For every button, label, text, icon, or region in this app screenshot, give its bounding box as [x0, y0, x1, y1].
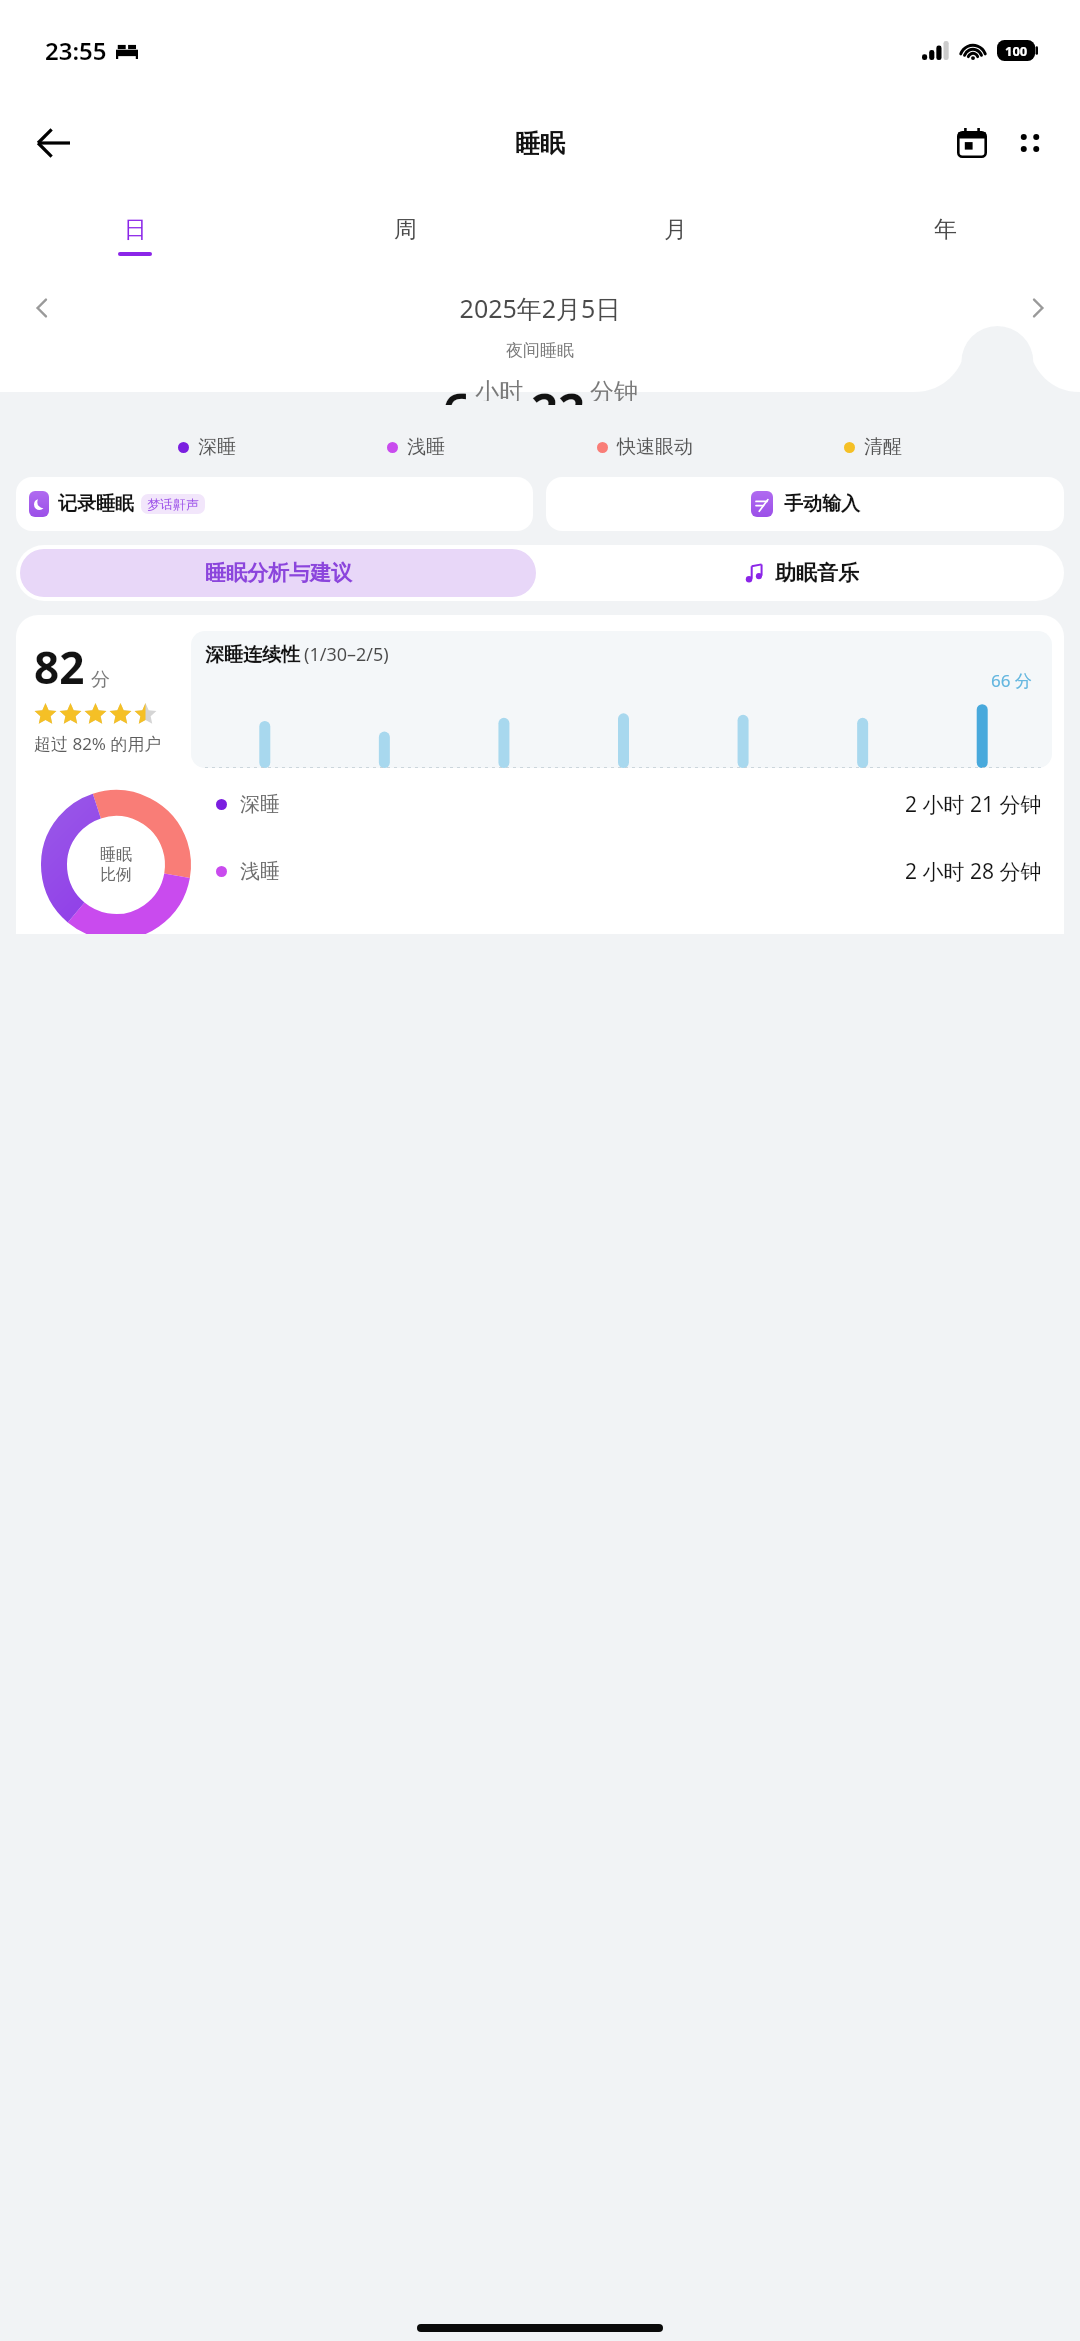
staticText: 清醒 [864, 435, 902, 459]
staticText: 月 [664, 215, 687, 244]
button[interactable]: More options [1002, 115, 1058, 171]
staticText: 周 [394, 215, 417, 244]
staticText: 睡眠 [515, 128, 565, 159]
staticText: 手动输入 [784, 492, 860, 516]
staticText: 2025年2月5日 [66, 291, 1014, 325]
staticText: 年 [934, 215, 957, 244]
staticText: 22 [531, 377, 585, 405]
staticText: 2 小时 21 分钟 [905, 790, 1042, 819]
button[interactable]: 月 [540, 198, 810, 272]
staticText: 深睡连续性 [205, 643, 300, 667]
staticText: 66 分 [991, 669, 1032, 692]
button[interactable]: Back [22, 112, 84, 174]
button[interactable]: 年 [810, 198, 1080, 272]
staticText: 23:55 [45, 34, 107, 67]
button[interactable]: 周 [270, 198, 540, 272]
button[interactable]: Next day [1014, 284, 1062, 332]
staticText: 梦话鼾声 [147, 496, 199, 512]
staticText: 比例 [100, 865, 132, 885]
staticText: 100 [1005, 42, 1028, 60]
staticText: 助眠音乐 [775, 560, 859, 586]
staticText: 小时 [475, 377, 523, 401]
staticText: 2 小时 28 分钟 [905, 857, 1042, 886]
button[interactable]: Previous day [18, 284, 66, 332]
staticText: 深睡 [198, 435, 236, 459]
button[interactable]: 记录睡眠 [16, 477, 533, 531]
staticText: 分钟 [590, 377, 638, 401]
staticText: 记录睡眠 [58, 492, 134, 516]
button[interactable]: 手动输入 [546, 477, 1064, 531]
staticText: 夜间睡眠 [0, 340, 1080, 361]
staticText: 日 [124, 215, 147, 244]
staticText: 分 [91, 668, 110, 692]
button[interactable]: Calendar [944, 115, 1000, 171]
staticText: 睡眠 [100, 845, 132, 865]
staticText: (1/30–2/5) [304, 642, 389, 667]
staticText: 深睡 [240, 792, 280, 817]
button[interactable]: 助眠音乐 [540, 545, 1064, 601]
staticText: 睡眠分析与建议 [205, 560, 352, 586]
staticText: 浅睡 [240, 859, 280, 884]
staticText: 快速眼动 [617, 435, 693, 459]
staticText: 82 [34, 637, 85, 697]
staticText: 超过 82% 的用户 [34, 732, 162, 755]
staticText: 6 [443, 377, 470, 405]
button[interactable]: 睡眠分析与建议 [20, 549, 536, 597]
staticText: 浅睡 [407, 435, 445, 459]
button[interactable]: 日 [0, 198, 270, 272]
